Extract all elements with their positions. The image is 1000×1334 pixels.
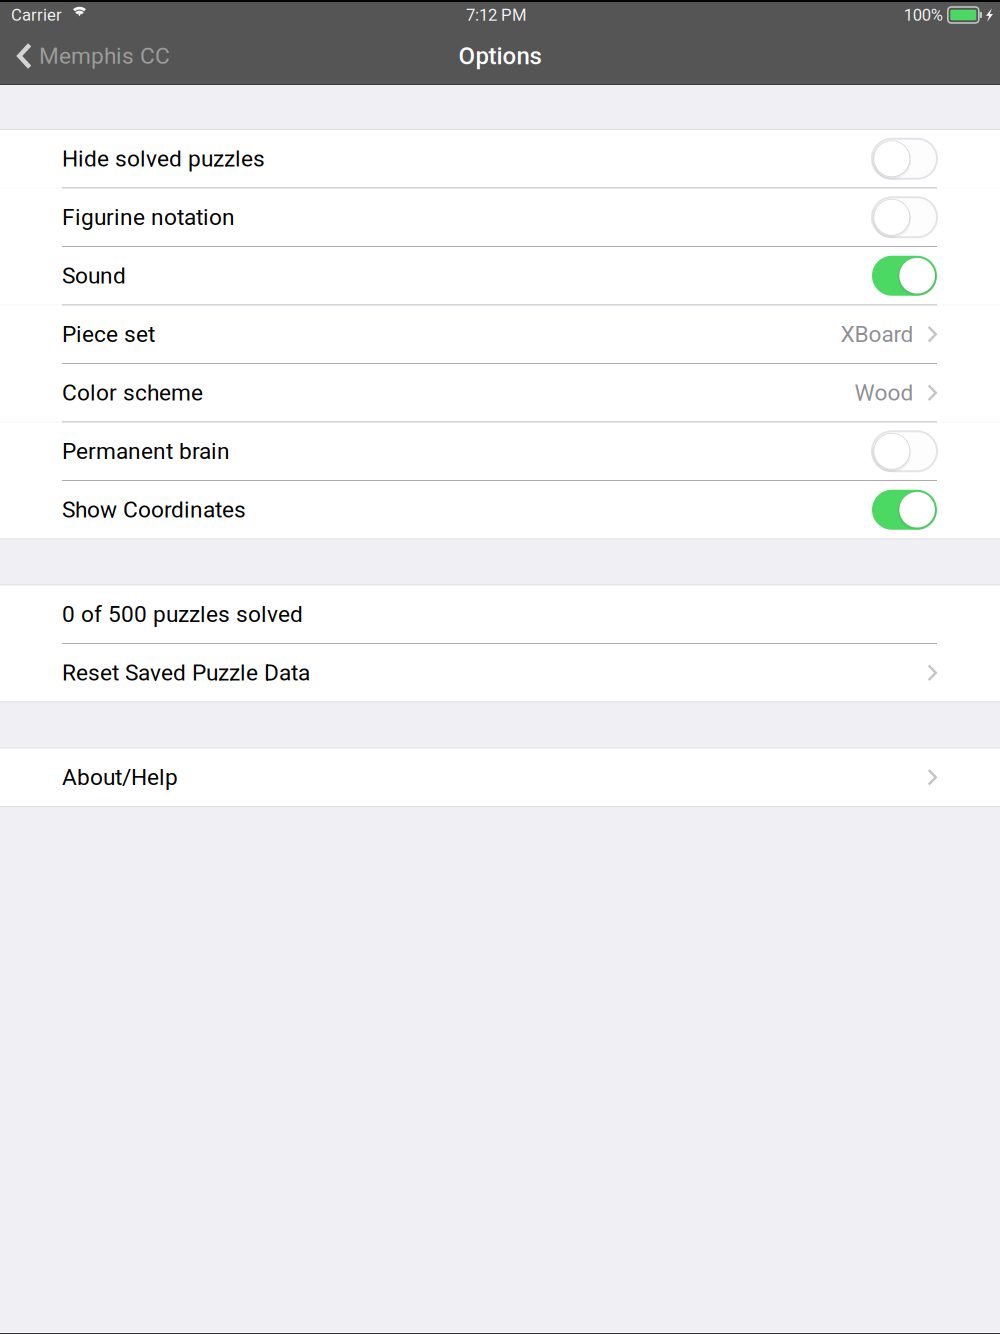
staticText: Figurine notation	[62, 204, 235, 231]
button[interactable]: 0 of 500 puzzles solved	[0, 585, 1000, 643]
button[interactable]: Memphis CC	[0, 28, 182, 84]
button[interactable]: Color scheme	[0, 364, 1000, 421]
staticText: Piece set	[62, 321, 155, 348]
staticText: Memphis CC	[39, 43, 170, 69]
staticText: Hide solved puzzles	[62, 145, 265, 172]
staticText: XBoard	[840, 321, 913, 348]
staticText: Carrier	[11, 5, 62, 25]
button[interactable]: About/Help	[0, 748, 1000, 806]
staticText: Reset Saved Puzzle Data	[62, 659, 310, 686]
staticText: 0 of 500 puzzles solved	[62, 601, 303, 628]
staticText: Wood	[854, 379, 913, 406]
button[interactable]: Piece set	[0, 305, 1000, 363]
button[interactable]: Sound	[0, 247, 1000, 304]
button[interactable]: Permanent brain	[0, 422, 1000, 480]
staticText: Show Coordinates	[62, 496, 246, 523]
staticText: Options	[458, 42, 541, 70]
staticText: About/Help	[62, 764, 178, 791]
staticText: Permanent brain	[62, 438, 230, 465]
button[interactable]: Figurine notation	[0, 188, 1000, 246]
button[interactable]: Hide solved puzzles	[0, 130, 1000, 187]
staticText: Color scheme	[62, 379, 203, 406]
button[interactable]: Reset Saved Puzzle Data	[0, 644, 1000, 701]
staticText: 7:12 PM	[466, 5, 527, 25]
staticText: 100%	[904, 5, 943, 25]
button[interactable]: Show Coordinates	[0, 481, 1000, 538]
staticText: Sound	[62, 262, 126, 289]
